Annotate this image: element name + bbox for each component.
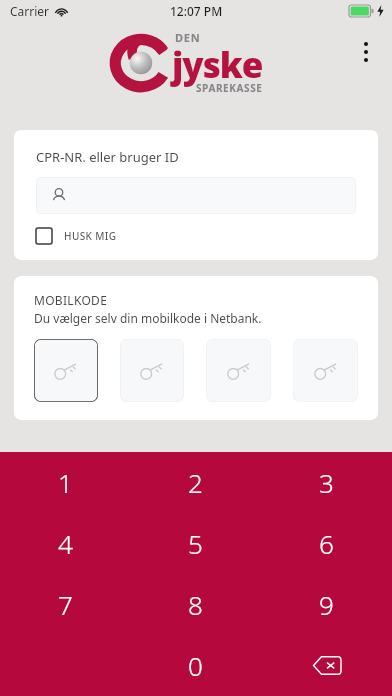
- staticText: SPAREKASSE: [196, 81, 263, 95]
- button[interactable]: HUSK MIG: [36, 228, 117, 244]
- button[interactable]: Mobile code digit: [34, 339, 98, 402]
- button[interactable]: 4: [0, 513, 130, 574]
- button[interactable]: Mobile code digit: [206, 339, 271, 402]
- staticText: 8: [188, 587, 203, 622]
- button[interactable]: 1: [0, 452, 130, 513]
- staticText: Du vælger selv din mobilkode i Netbank.: [34, 310, 262, 326]
- staticText: DEN: [175, 30, 201, 45]
- staticText: 1: [58, 465, 73, 500]
- button[interactable]: More options: [346, 32, 386, 72]
- staticText: 0: [188, 648, 203, 683]
- button[interactable]: Delete: [261, 635, 392, 696]
- staticText: MOBILKODE: [34, 292, 108, 308]
- button[interactable]: 7: [0, 574, 130, 635]
- staticText: 9: [319, 587, 334, 622]
- staticText: 5: [188, 526, 203, 561]
- staticText: Carrier: [10, 3, 50, 19]
- button[interactable]: CPR number or user ID input: [36, 177, 356, 214]
- staticText: 3: [319, 465, 334, 500]
- button[interactable]: 0: [130, 635, 261, 696]
- button[interactable]: 2: [130, 452, 261, 513]
- staticText: 12:07 PM: [170, 3, 223, 19]
- button[interactable]: 5: [130, 513, 261, 574]
- staticText: jyske: [172, 41, 263, 89]
- staticText: 2: [188, 465, 203, 500]
- button[interactable]: 6: [261, 513, 392, 574]
- button[interactable]: 3: [261, 452, 392, 513]
- button[interactable]: 8: [130, 574, 261, 635]
- button[interactable]: Mobile code digit: [293, 339, 358, 402]
- staticText: HUSK MIG: [64, 229, 117, 243]
- staticText: 6: [319, 526, 334, 561]
- staticText: CPR-NR. eller bruger ID: [36, 148, 179, 166]
- staticText: 7: [58, 587, 73, 622]
- button[interactable]: 9: [261, 574, 392, 635]
- button[interactable]: Mobile code digit: [120, 339, 184, 402]
- staticText: 4: [58, 526, 73, 561]
